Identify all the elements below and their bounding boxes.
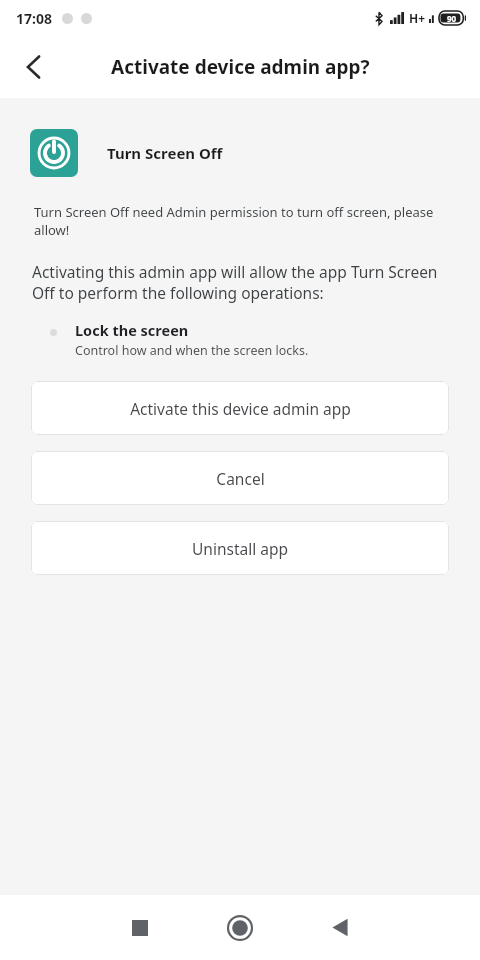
- button[interactable]: Back: [10, 43, 58, 91]
- button[interactable]: Back: [290, 895, 390, 960]
- button[interactable]: Recents: [90, 895, 190, 960]
- staticText: Turn Screen Off need Admin permission to…: [34, 203, 440, 239]
- staticText: Uninstall app: [192, 538, 288, 559]
- staticText: Activate device admin app?: [111, 54, 370, 80]
- staticText: 90: [447, 13, 457, 24]
- staticText: H+: [409, 10, 426, 26]
- button[interactable]: Activate this device admin app: [31, 381, 449, 435]
- staticText: Activating this admin app will allow the…: [32, 261, 448, 304]
- staticText: Lock the screen: [75, 320, 189, 340]
- button[interactable]: Home: [190, 895, 290, 960]
- staticText: Turn Screen Off: [107, 143, 223, 163]
- staticText: Cancel: [216, 468, 265, 489]
- button[interactable]: Uninstall app: [31, 521, 449, 575]
- button[interactable]: Cancel: [31, 451, 449, 505]
- staticText: 17:08: [16, 9, 52, 28]
- staticText: Activate this device admin app: [130, 398, 351, 419]
- staticText: Control how and when the screen locks.: [75, 342, 309, 359]
